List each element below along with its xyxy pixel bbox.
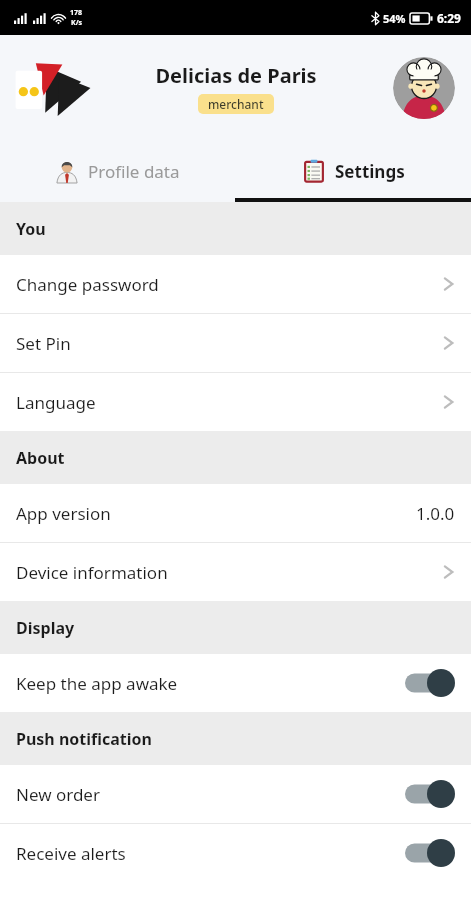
staticText: App version (16, 502, 111, 525)
button[interactable]: New order (0, 765, 471, 823)
button[interactable]: Language (0, 373, 471, 431)
staticText: Language (16, 391, 96, 414)
button[interactable]: Change password (0, 255, 471, 313)
staticText: Push notification (16, 728, 152, 750)
staticText: Change password (16, 273, 159, 296)
staticText: Device information (16, 561, 168, 584)
staticText: Keep the app awake (16, 672, 178, 695)
staticText: merchant (208, 96, 264, 112)
staticText: New order (16, 783, 100, 806)
staticText: 1.0.0 (416, 502, 455, 525)
staticText: About (16, 447, 65, 469)
button[interactable]: Keep the app awake (0, 654, 471, 712)
staticText: Delicias de Paris (155, 62, 317, 89)
staticText: Profile data (88, 160, 180, 183)
staticText: You (16, 218, 46, 240)
button[interactable]: Profile data (0, 140, 235, 202)
staticText: K/s (71, 18, 83, 28)
staticText: Display (16, 617, 75, 639)
staticText: 54% (383, 11, 406, 26)
staticText: 178 (70, 8, 83, 18)
button[interactable]: Set Pin (0, 314, 471, 372)
button[interactable]: Settings (235, 140, 471, 202)
button[interactable]: Toggle (405, 669, 455, 697)
button[interactable]: Toggle (405, 780, 455, 808)
button[interactable]: Profile avatar (393, 57, 455, 119)
button[interactable]: Receive alerts (0, 824, 471, 882)
button[interactable]: Angola logo (14, 57, 92, 119)
staticText: Set Pin (16, 332, 71, 355)
button[interactable]: Toggle (405, 839, 455, 867)
button[interactable]: App version (0, 484, 471, 542)
staticText: Settings (335, 160, 405, 183)
button[interactable]: Device information (0, 543, 471, 601)
staticText: 6:29 (437, 10, 461, 26)
staticText: Receive alerts (16, 842, 126, 865)
